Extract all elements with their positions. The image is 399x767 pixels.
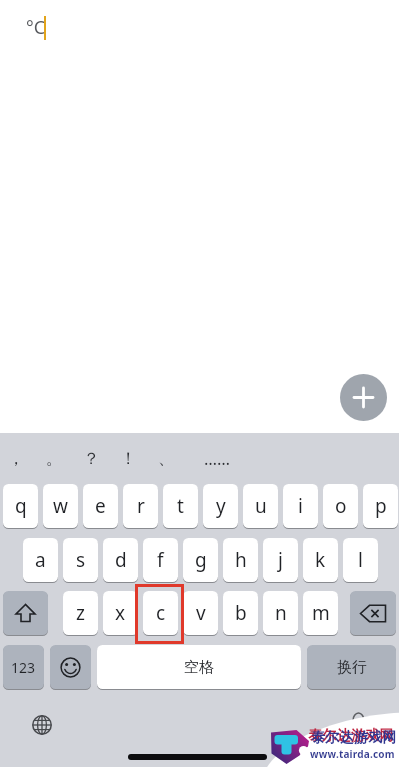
- staticText: i: [298, 493, 303, 519]
- button[interactable]: j: [263, 538, 298, 582]
- button[interactable]: [350, 591, 396, 635]
- button[interactable]: g: [183, 538, 218, 582]
- button[interactable]: i: [283, 484, 318, 528]
- staticText: ，: [8, 448, 25, 469]
- staticText: g: [195, 547, 207, 573]
- button[interactable]: x: [103, 591, 138, 635]
- staticText: u: [255, 493, 267, 519]
- button[interactable]: a: [23, 538, 58, 582]
- button[interactable]: [50, 645, 91, 689]
- button[interactable]: c: [143, 591, 178, 635]
- button[interactable]: k: [303, 538, 338, 582]
- staticText: www.tairda.com: [310, 747, 395, 761]
- button[interactable]: l: [343, 538, 378, 582]
- button[interactable]: p: [363, 484, 398, 528]
- staticText: z: [76, 600, 85, 626]
- staticText: o: [335, 493, 347, 519]
- button[interactable]: b: [223, 591, 258, 635]
- staticText: 123: [11, 658, 36, 677]
- staticText: e: [95, 493, 106, 519]
- staticText: y: [216, 493, 226, 519]
- staticText: 换行: [337, 658, 367, 677]
- button[interactable]: 空格: [97, 645, 301, 689]
- button[interactable]: 换行: [307, 645, 396, 689]
- staticText: ！: [120, 448, 137, 469]
- staticText: t: [177, 493, 184, 519]
- button[interactable]: 。: [43, 444, 65, 472]
- button[interactable]: t: [163, 484, 198, 528]
- button[interactable]: f: [143, 538, 178, 582]
- staticText: d: [115, 547, 127, 573]
- button[interactable]: s: [63, 538, 98, 582]
- button[interactable]: v: [183, 591, 218, 635]
- staticText: v: [196, 600, 206, 626]
- staticText: j: [278, 547, 283, 573]
- button[interactable]: d: [103, 538, 138, 582]
- staticText: 、: [158, 448, 175, 469]
- button[interactable]: [3, 591, 48, 635]
- staticText: n: [275, 600, 287, 626]
- staticText: a: [35, 547, 46, 573]
- button[interactable]: ，: [5, 444, 27, 472]
- staticText: k: [315, 547, 326, 573]
- staticText: q: [15, 493, 27, 519]
- button[interactable]: [340, 374, 387, 421]
- button[interactable]: [28, 711, 56, 739]
- button[interactable]: m: [303, 591, 338, 635]
- staticText: s: [76, 547, 86, 573]
- button[interactable]: ……: [197, 444, 237, 472]
- staticText: r: [137, 493, 145, 519]
- staticText: ……: [204, 447, 231, 469]
- button[interactable]: h: [223, 538, 258, 582]
- button[interactable]: z: [63, 591, 98, 635]
- button[interactable]: o: [323, 484, 358, 528]
- button[interactable]: 、: [155, 444, 177, 472]
- staticText: °C: [26, 15, 46, 40]
- staticText: c: [156, 600, 166, 626]
- button[interactable]: 123: [3, 645, 44, 689]
- staticText: m: [312, 600, 330, 626]
- staticText: ？: [83, 448, 100, 469]
- button[interactable]: e: [83, 484, 118, 528]
- staticText: b: [235, 600, 247, 626]
- staticText: l: [358, 547, 363, 573]
- staticText: h: [235, 547, 247, 573]
- button[interactable]: ！: [117, 444, 139, 472]
- button[interactable]: q: [3, 484, 38, 528]
- staticText: x: [115, 600, 126, 626]
- staticText: 泰尔达游戏网: [308, 727, 394, 745]
- staticText: p: [375, 493, 387, 519]
- button[interactable]: ？: [80, 444, 102, 472]
- button[interactable]: w: [43, 484, 78, 528]
- staticText: 泰尔达游戏网: [311, 729, 397, 747]
- button[interactable]: u: [243, 484, 278, 528]
- staticText: 。: [46, 448, 63, 469]
- button[interactable]: n: [263, 591, 298, 635]
- button[interactable]: y: [203, 484, 238, 528]
- staticText: 空格: [184, 658, 214, 677]
- staticText: f: [157, 547, 164, 573]
- staticText: w: [53, 493, 68, 519]
- button[interactable]: r: [123, 484, 158, 528]
